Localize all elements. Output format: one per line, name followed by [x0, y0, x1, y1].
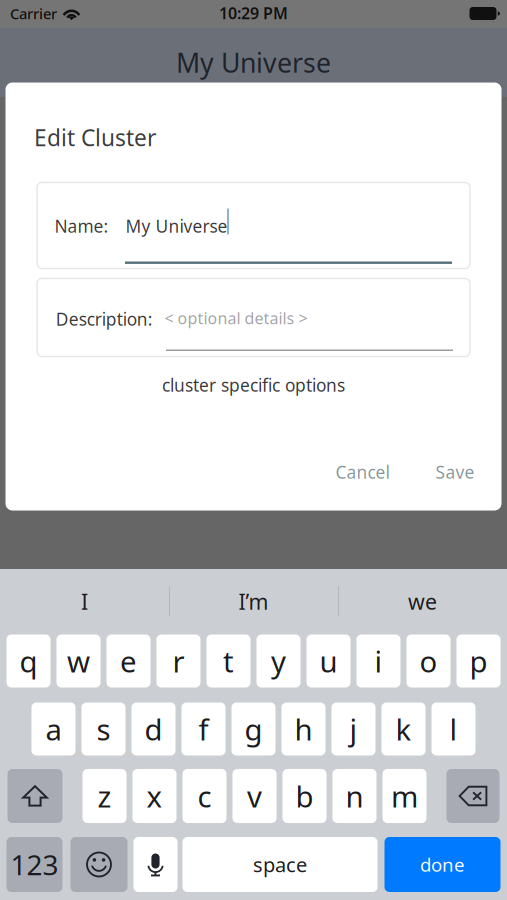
staticText: space [253, 851, 307, 878]
staticText: < optional details > [164, 307, 307, 329]
button[interactable]: done [384, 837, 500, 892]
staticText: x [146, 776, 162, 815]
button[interactable]: z [82, 769, 126, 823]
button[interactable]: Save [423, 448, 486, 495]
staticText: Save [435, 460, 474, 483]
staticText: a [45, 709, 61, 748]
staticText: My Universe [176, 45, 331, 80]
staticText: n [345, 776, 363, 815]
staticText: p [469, 641, 487, 680]
button[interactable]: Emoji [70, 837, 127, 892]
button[interactable]: b [282, 769, 326, 823]
button[interactable]: i [356, 634, 400, 687]
staticText: u [319, 641, 337, 680]
button[interactable]: s [81, 702, 125, 755]
button[interactable]: Cancel [323, 448, 401, 495]
staticText: Cancel [335, 460, 389, 483]
staticText: Carrier [10, 4, 57, 23]
staticText: k [395, 709, 411, 748]
staticText: My Universe [125, 214, 227, 237]
button[interactable]: c [182, 769, 226, 823]
button[interactable]: o [406, 634, 450, 687]
staticText: Description: [56, 307, 153, 330]
staticText: y [271, 641, 286, 680]
staticText: j [349, 709, 357, 748]
staticText: r [172, 641, 184, 680]
staticText: h [294, 709, 312, 748]
button[interactable]: Shift [7, 769, 62, 823]
staticText: done [420, 852, 465, 877]
button[interactable]: h [281, 702, 325, 755]
button[interactable]: Delete [446, 769, 499, 823]
button[interactable]: d [131, 702, 175, 755]
staticText: I’m [238, 587, 268, 616]
staticText: o [419, 641, 437, 680]
button[interactable]: k [381, 702, 425, 755]
button[interactable]: space [182, 837, 377, 892]
button[interactable]: f [181, 702, 225, 755]
button[interactable]: g [231, 702, 275, 755]
staticText: 10:29 PM [219, 2, 288, 24]
button[interactable]: a [31, 702, 75, 755]
button[interactable]: u [306, 634, 350, 687]
staticText: s [96, 709, 110, 748]
button[interactable]: n [332, 769, 376, 823]
button[interactable]: j [331, 702, 375, 755]
staticText: c [197, 776, 211, 815]
staticText: Name: [54, 214, 108, 237]
button[interactable]: 123 [6, 837, 62, 892]
staticText: Edit Cluster [34, 122, 156, 153]
staticText: we [408, 587, 437, 616]
staticText: b [295, 776, 313, 815]
button[interactable]: q [6, 634, 50, 687]
button[interactable]: x [132, 769, 176, 823]
staticText: g [244, 709, 262, 748]
button[interactable]: w [56, 634, 100, 687]
staticText: f [198, 709, 208, 748]
button[interactable]: r [156, 634, 200, 687]
button[interactable]: y [256, 634, 300, 687]
staticText: z [97, 776, 111, 815]
button[interactable]: Dictation [133, 837, 177, 892]
staticText: q [19, 641, 37, 680]
staticText: l [449, 709, 457, 748]
staticText: cluster specific options [162, 373, 345, 396]
button[interactable]: p [456, 634, 500, 687]
staticText: v [247, 776, 262, 815]
staticText: m [391, 776, 418, 815]
staticText: e [120, 641, 137, 680]
staticText: 123 [10, 846, 58, 883]
staticText: I [81, 587, 88, 616]
button[interactable]: l [431, 702, 475, 755]
button[interactable]: v [232, 769, 276, 823]
button[interactable]: m [382, 769, 426, 823]
staticText: i [374, 641, 382, 680]
staticText: d [144, 709, 162, 748]
staticText: t [223, 641, 234, 680]
button[interactable]: e [106, 634, 150, 687]
staticText: w [67, 641, 90, 680]
button[interactable]: t [206, 634, 250, 687]
